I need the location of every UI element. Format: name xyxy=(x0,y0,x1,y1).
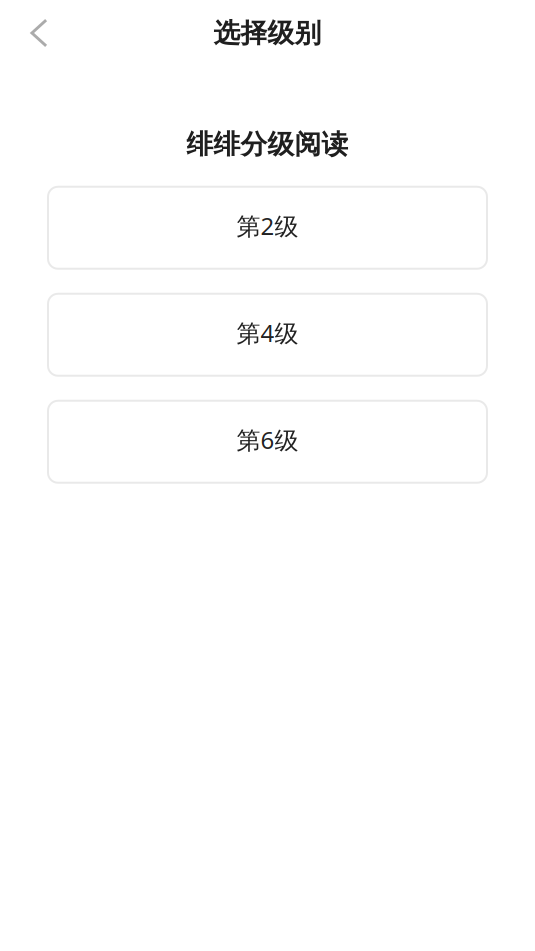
button[interactable]: Back xyxy=(16,10,62,56)
staticText: 第6级 xyxy=(236,424,298,456)
staticText: 第4级 xyxy=(236,317,298,349)
button[interactable]: 第2级 xyxy=(48,187,487,269)
button[interactable]: 第4级 xyxy=(48,294,487,376)
staticText: 第2级 xyxy=(236,210,298,242)
button[interactable]: 第6级 xyxy=(48,401,487,483)
staticText: 绯绯分级阅读 xyxy=(186,128,348,161)
staticText: 选择级别 xyxy=(213,17,321,49)
